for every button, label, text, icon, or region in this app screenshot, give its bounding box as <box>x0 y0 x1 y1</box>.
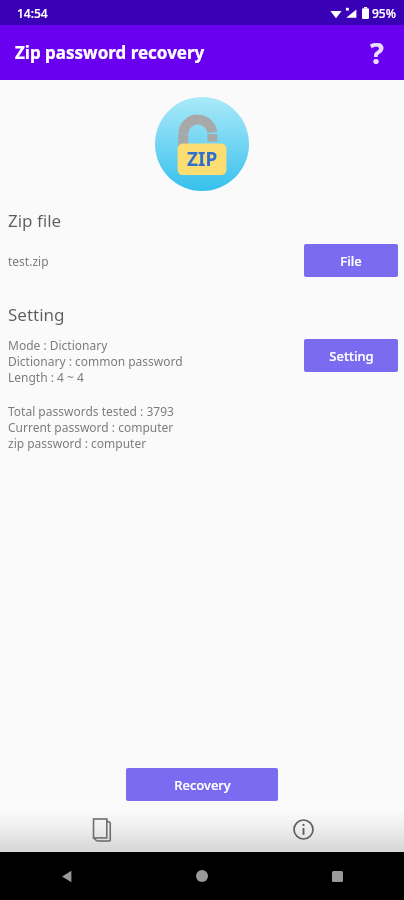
staticText: 95% <box>372 5 396 21</box>
staticText: Zip file <box>8 209 62 232</box>
staticText: Recovery <box>174 776 231 794</box>
staticText: 14:54 <box>17 5 48 21</box>
button[interactable]: Recents <box>322 861 352 891</box>
staticText: Mode : Dictionary <box>8 337 108 353</box>
button[interactable]: Recovery <box>126 768 278 801</box>
button[interactable]: Home <box>187 861 217 891</box>
button[interactable]: File <box>304 244 398 277</box>
staticText: File <box>340 252 362 270</box>
staticText: Dictionary : common password <box>8 353 183 369</box>
button[interactable]: Back <box>52 861 82 891</box>
staticText: Setting <box>8 303 65 326</box>
staticText: ZIP <box>187 146 218 172</box>
button[interactable]: Information <box>202 807 404 852</box>
staticText: zip password : computer <box>8 435 147 451</box>
staticText: test.zip <box>8 253 304 269</box>
staticText: Total passwords tested : 3793 <box>8 403 174 419</box>
staticText: Current password : computer <box>8 419 174 435</box>
staticText: Zip password recovery <box>15 41 205 64</box>
button[interactable]: Setting <box>304 339 398 372</box>
staticText: Length : 4 ~ 4 <box>8 369 84 385</box>
button[interactable]: Help <box>349 25 404 80</box>
button[interactable]: Dictionary <box>0 807 202 852</box>
staticText: ? <box>370 33 384 72</box>
staticText: Setting <box>329 347 374 365</box>
